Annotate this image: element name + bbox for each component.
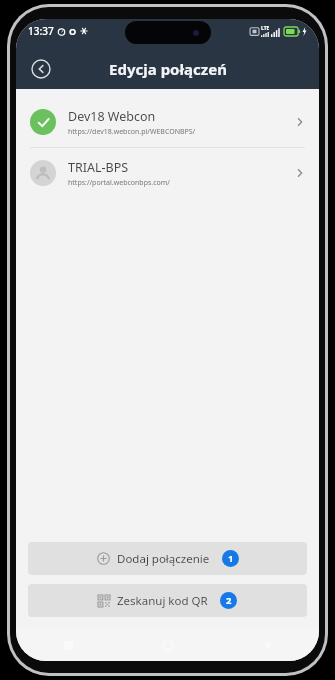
- staticText: 1: [228, 552, 234, 565]
- staticText: Edycja połączeń: [109, 59, 227, 79]
- staticText: LTE: [261, 25, 270, 32]
- staticText: https://dev18.webcon.pl/WEBCONBPS/: [68, 127, 196, 137]
- staticText: O: [69, 25, 77, 37]
- button[interactable]: Back: [26, 54, 56, 84]
- staticText: TRIAL-BPS: [68, 159, 129, 176]
- button[interactable]: TRIAL-BPS: [16, 148, 319, 198]
- staticText: 2: [226, 594, 232, 607]
- button[interactable]: Dodaj połączenie: [28, 542, 307, 575]
- staticText: https://portal.webconbps.com/: [68, 178, 170, 188]
- staticText: 13:37: [28, 24, 54, 38]
- staticText: Dev18 Webcon: [68, 108, 156, 125]
- button[interactable]: Dev18 Webcon: [16, 97, 319, 147]
- staticText: Zeskanuj kod QR: [117, 593, 208, 609]
- button[interactable]: Zeskanuj kod QR: [28, 584, 307, 617]
- staticText: Dodaj połączenie: [117, 551, 210, 567]
